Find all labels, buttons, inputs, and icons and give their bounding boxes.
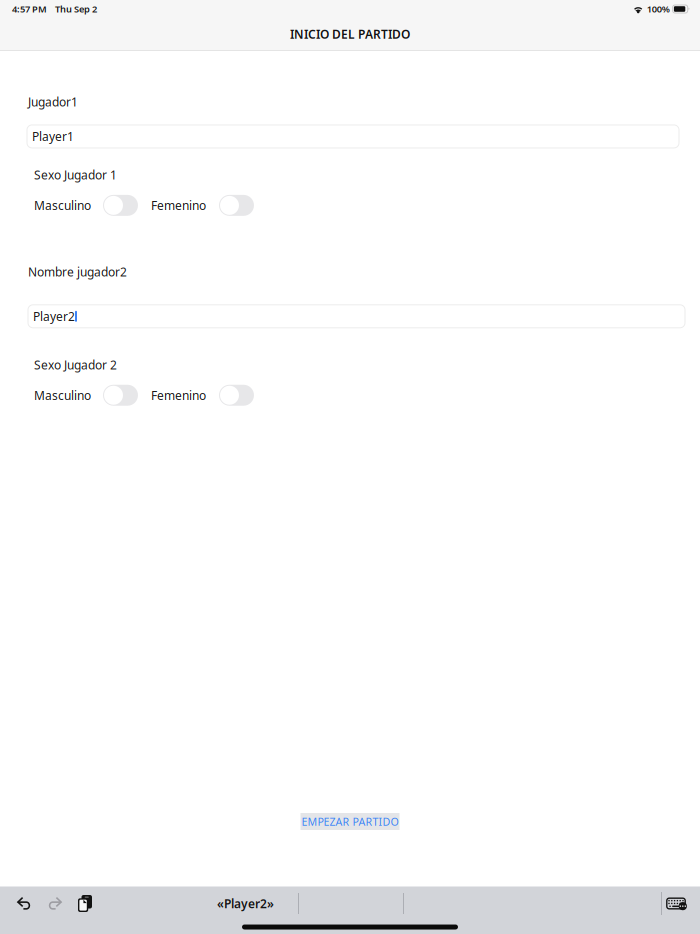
staticText: Nombre jugador2 — [28, 264, 127, 280]
staticText: Femenino — [151, 387, 206, 403]
staticText: Masculino — [34, 197, 91, 213]
staticText: EMPEZAR PARTIDO — [301, 814, 398, 829]
staticText: Femenino — [151, 197, 206, 213]
staticText: Player1 — [32, 128, 74, 144]
button[interactable]: Undo — [9, 890, 38, 917]
button[interactable]: EMPEZAR PARTIDO — [300, 813, 399, 830]
staticText: Sexo Jugador 1 — [34, 167, 117, 183]
staticText: «Player2» — [217, 895, 274, 911]
staticText: Thu Sep 2 — [55, 3, 97, 15]
staticText: Player2 — [33, 308, 75, 324]
staticText: Sexo Jugador 2 — [34, 357, 117, 373]
staticText: Jugador1 — [28, 94, 78, 110]
staticText: 100% — [647, 3, 670, 15]
button[interactable]: Keyboard — [662, 889, 694, 918]
button[interactable]: Femenino 1 — [219, 195, 254, 216]
staticText: 4:57 PM — [12, 3, 47, 15]
staticText: Masculino — [34, 387, 91, 403]
button[interactable]: Femenino 2 — [219, 385, 254, 406]
button[interactable]: Redo — [38, 890, 67, 917]
button[interactable]: Masculino 1 — [103, 195, 138, 216]
staticText: INICIO DEL PARTIDO — [290, 26, 410, 42]
button[interactable]: «Player2» — [193, 888, 298, 918]
button[interactable]: Paste — [67, 889, 97, 918]
button[interactable]: Masculino 2 — [103, 385, 138, 406]
